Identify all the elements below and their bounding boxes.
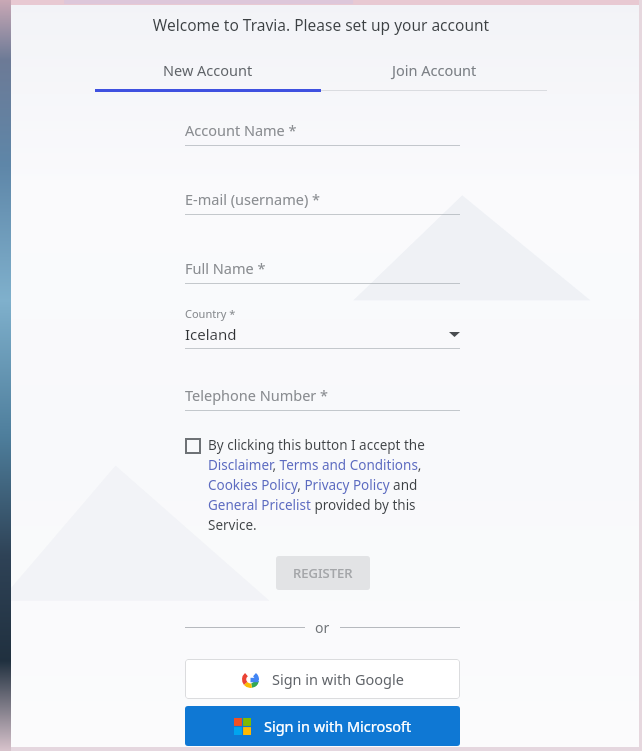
staticText: or: [315, 618, 330, 637]
button[interactable]: Sign in with Google: [185, 659, 460, 699]
staticText: Telephone Number *: [185, 385, 329, 405]
button[interactable]: Sign in with Microsoft: [185, 706, 460, 746]
staticText: Welcome to Travia. Please set up your ac…: [0, 14, 642, 35]
button[interactable]: REGISTER: [276, 556, 370, 590]
staticText: Sign in with Google: [272, 669, 404, 689]
staticText: Full Name *: [185, 258, 266, 278]
button[interactable]: Account Name *: [185, 120, 460, 146]
staticText: By clicking this button I accept the Dis…: [208, 436, 460, 534]
staticText: E-mail (username) *: [185, 189, 321, 209]
staticText: Country *: [185, 306, 236, 321]
staticText: Account Name *: [185, 120, 297, 140]
button[interactable]: Country *: [185, 306, 460, 349]
staticText: Join Account: [392, 60, 477, 80]
staticText: REGISTER: [293, 564, 353, 582]
staticText: New Account: [163, 60, 253, 80]
button[interactable]: E-mail (username) *: [185, 189, 460, 215]
staticText: Sign in with Microsoft: [264, 716, 412, 736]
button[interactable]: Join Account: [321, 56, 547, 84]
button[interactable]: Full Name *: [185, 258, 460, 284]
button[interactable]: New Account: [95, 56, 321, 84]
staticText: Iceland: [185, 324, 449, 344]
button[interactable]: Telephone Number *: [185, 385, 460, 411]
button[interactable]: Accept terms checkbox: [185, 438, 201, 454]
